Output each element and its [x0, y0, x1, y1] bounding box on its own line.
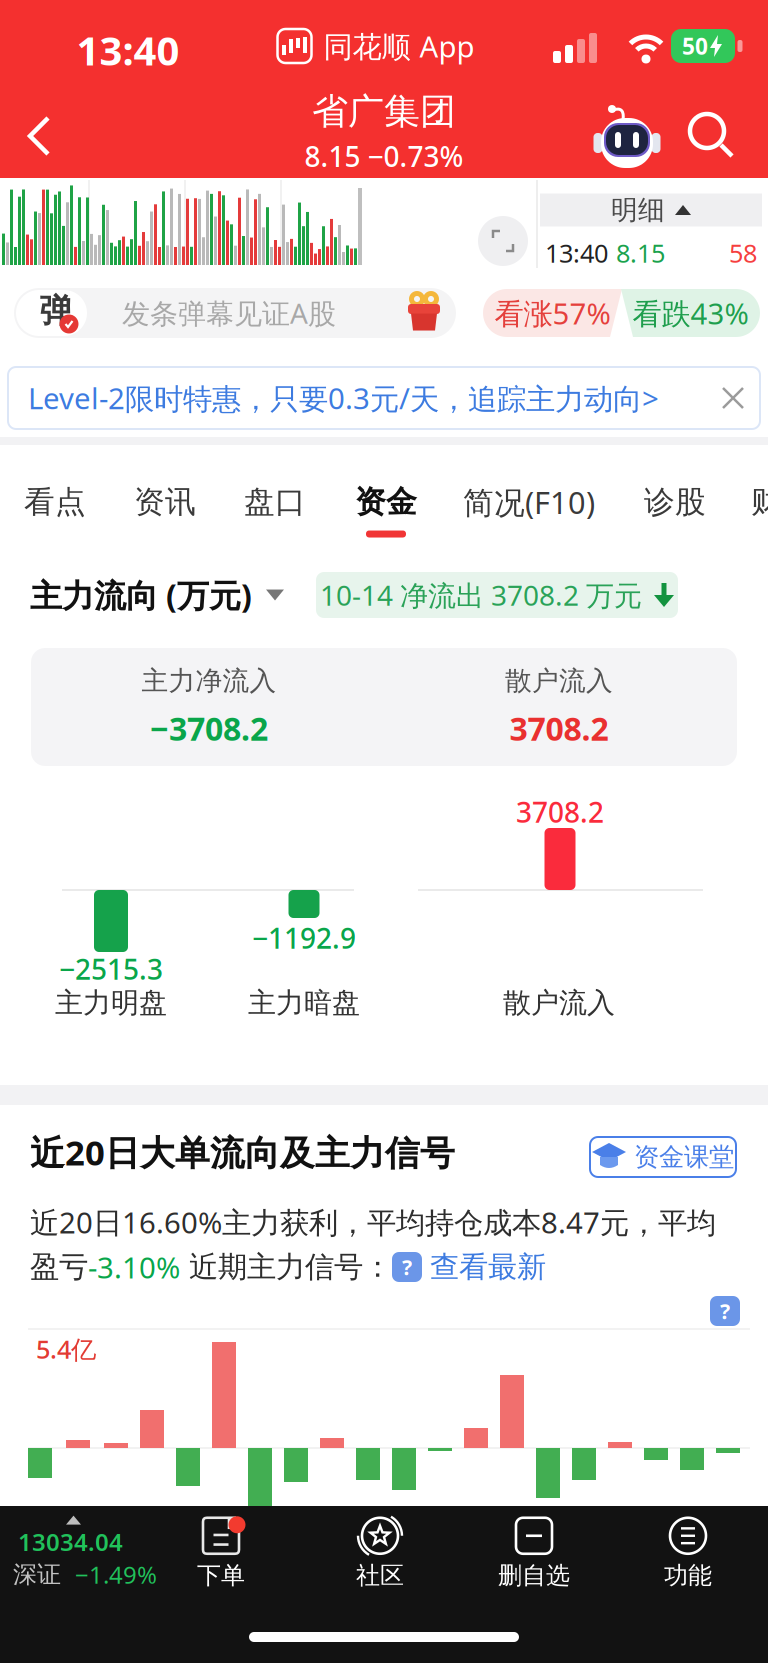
staticText: 盘口 [244, 483, 306, 521]
staticText: 下单 [197, 1561, 245, 1590]
staticText: 看点 [24, 483, 86, 521]
staticText: 财经 [751, 483, 768, 521]
staticText: 盈亏 [30, 1249, 88, 1285]
button[interactable]: Dismiss banner [713, 378, 753, 418]
staticText: 功能 [664, 1561, 712, 1590]
staticText: 3708.2 [516, 793, 604, 831]
staticText: 8.15 [616, 236, 665, 270]
staticText: 资金课堂 [634, 1141, 734, 1172]
staticText: 明细 [611, 194, 665, 226]
staticText: 同花顺 App [323, 26, 474, 65]
button[interactable]: Search [690, 114, 734, 158]
staticText: 删自选 [498, 1561, 570, 1590]
button[interactable]: 财经 [739, 473, 768, 531]
staticText: 主力净流入 [141, 664, 276, 697]
button[interactable]: 查看最新 [430, 1249, 546, 1285]
button[interactable]: 资金 [343, 473, 429, 531]
staticText: ? [720, 1297, 730, 1325]
staticText: 近20日大单流向及主力信号 [30, 1129, 455, 1175]
button[interactable]: Help [710, 1296, 740, 1326]
staticText: 深证 [13, 1560, 61, 1589]
staticText: 13034.04 [18, 1526, 123, 1557]
button[interactable]: Back [20, 110, 76, 162]
staticText: 13:40 [76, 23, 179, 76]
button[interactable]: 明细 [540, 193, 762, 226]
button[interactable]: Level-2限时特惠，只要0.3元/天，追踪主力动向> [8, 367, 760, 429]
staticText: 10-14 净流出 3708.2 万元 [320, 576, 642, 614]
button[interactable]: 13034.04 [13, 1516, 157, 1590]
staticText: Level-2限时特惠，只要0.3元/天，追踪主力动向> [28, 378, 659, 417]
staticText: 近期主力信号： [180, 1249, 392, 1285]
staticText: 资讯 [134, 483, 196, 521]
staticText: 社区 [356, 1561, 404, 1590]
staticText: 3708.2 [509, 707, 608, 750]
button[interactable]: 功能 [623, 1516, 753, 1590]
button[interactable]: Expand chart [478, 216, 528, 266]
button[interactable]: 弹 [14, 288, 456, 338]
staticText: 简况(F10) [463, 482, 595, 522]
staticText: 看跌43% [632, 293, 748, 332]
button[interactable]: 下单 [156, 1516, 286, 1590]
staticText: 诊股 [644, 483, 706, 521]
button[interactable]: 诊股 [632, 473, 718, 531]
button[interactable]: 看点 [12, 473, 98, 531]
button[interactable]: 看跌43% [621, 289, 760, 337]
button[interactable]: Help [392, 1252, 422, 1282]
staticText: −2515.3 [59, 950, 163, 988]
staticText: 50 [682, 31, 708, 61]
staticText: −1192.9 [252, 919, 356, 957]
staticText: −1.49% [75, 1558, 157, 1590]
staticText: 主力流向 (万元) [30, 574, 252, 616]
button[interactable]: 主力流向 (万元) [30, 574, 284, 616]
button[interactable]: 看涨57% [483, 289, 622, 337]
staticText: 58 [729, 236, 757, 270]
staticText: 看涨57% [494, 293, 610, 332]
staticText: −3708.2 [150, 707, 268, 750]
staticText: 省广集团 [312, 89, 456, 133]
button[interactable]: 社区 [315, 1516, 445, 1590]
staticText: ? [402, 1253, 412, 1281]
staticText: 主力暗盘 [248, 986, 360, 1020]
staticText: -3.10% [88, 1247, 180, 1286]
staticText: 8.15 −0.73% [304, 137, 463, 175]
staticText: 散户流入 [503, 986, 615, 1020]
staticText: 主力明盘 [55, 986, 167, 1020]
staticText: 近20日16.60%主力获利，平均持仓成本8.47元，平均 [30, 1202, 716, 1241]
staticText: 发条弹幕见证A股 [122, 294, 336, 332]
button[interactable]: 简况(F10) [451, 472, 607, 532]
button[interactable]: 资金课堂 [590, 1137, 736, 1177]
staticText: 资金 [355, 483, 417, 521]
button[interactable]: AI assistant [593, 102, 661, 170]
staticText: 弹 [39, 290, 72, 331]
staticText: 散户流入 [505, 664, 613, 697]
button[interactable]: 删自选 [469, 1516, 599, 1590]
staticText: 查看最新 [430, 1249, 546, 1285]
staticText: 5.4亿 [36, 1332, 96, 1366]
button[interactable]: 盘口 [232, 473, 318, 531]
staticText: 13:40 [545, 236, 608, 270]
button[interactable]: 资讯 [122, 473, 208, 531]
